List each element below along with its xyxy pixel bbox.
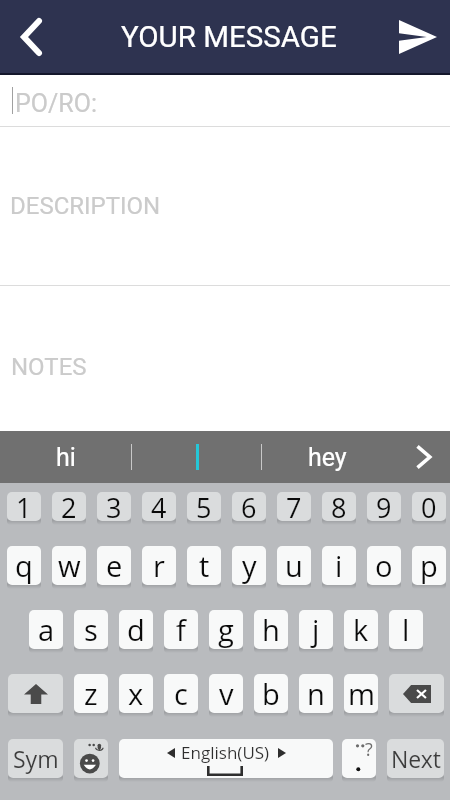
staticText: x — [128, 674, 144, 713]
button[interactable]: 7 — [277, 492, 311, 521]
button[interactable]: More suggestions — [396, 431, 450, 483]
staticText: 7 — [286, 492, 302, 518]
button[interactable]: 8 — [322, 492, 356, 521]
staticText: n — [307, 674, 325, 713]
button[interactable]: y — [232, 546, 266, 585]
staticText: m — [348, 674, 375, 713]
staticText: hey — [308, 443, 347, 472]
button[interactable]: f — [164, 610, 198, 649]
staticText: Next — [391, 743, 441, 774]
button[interactable]: n — [299, 674, 333, 713]
staticText: d — [127, 610, 145, 649]
staticText: c — [174, 674, 188, 713]
staticText: o — [375, 546, 393, 585]
button[interactable]: PO/RO: — [0, 75, 450, 127]
button[interactable]: Shift — [8, 674, 63, 713]
staticText: 1 — [16, 492, 32, 518]
staticText: k — [353, 610, 369, 649]
staticText: 2 — [61, 492, 77, 518]
button[interactable]: Emoji and voice input — [74, 739, 108, 778]
button[interactable]: hi — [1, 431, 130, 483]
button[interactable]: Sym — [8, 739, 63, 778]
staticText: e — [106, 546, 123, 585]
button[interactable]: c — [164, 674, 198, 713]
staticText: 8 — [331, 492, 347, 518]
staticText: Sym — [13, 743, 59, 774]
button[interactable]: Space, English (US) — [119, 739, 333, 778]
button[interactable]: 0 — [412, 492, 446, 521]
staticText: YOUR MESSAGE — [121, 20, 337, 55]
staticText: p — [420, 546, 438, 585]
button[interactable]: e — [97, 546, 131, 585]
staticText: English(US) — [181, 741, 270, 764]
staticText: hi — [56, 443, 76, 472]
staticText: w — [58, 546, 81, 585]
button[interactable]: 4 — [142, 492, 176, 521]
button[interactable]: d — [119, 610, 153, 649]
button[interactable]: l — [389, 610, 423, 649]
button[interactable]: a — [29, 610, 63, 649]
staticText: r — [153, 546, 165, 585]
button[interactable]: 6 — [232, 492, 266, 521]
staticText: l — [402, 610, 410, 649]
staticText: 9 — [376, 492, 392, 518]
button[interactable]: x — [119, 674, 153, 713]
button[interactable]: k — [344, 610, 378, 649]
button[interactable]: Backspace — [389, 674, 444, 713]
button[interactable]: 5 — [187, 492, 221, 521]
button[interactable]: DESCRIPTION — [0, 127, 450, 286]
button[interactable]: i — [322, 546, 356, 585]
button[interactable]: z — [74, 674, 108, 713]
button[interactable]: p — [412, 546, 446, 585]
staticText: g — [218, 610, 234, 649]
button[interactable]: v — [209, 674, 243, 713]
staticText: q — [15, 546, 33, 585]
button[interactable]: 1 — [7, 492, 41, 521]
button[interactable]: Back — [9, 0, 54, 73]
staticText: b — [262, 674, 280, 713]
button[interactable]: m — [344, 674, 378, 713]
staticText: s — [84, 610, 98, 649]
button[interactable]: Next — [387, 739, 444, 778]
staticText: 3 — [106, 492, 122, 518]
staticText: z — [84, 674, 98, 713]
staticText: f — [176, 610, 186, 649]
button[interactable]: 2 — [52, 492, 86, 521]
button[interactable]: g — [209, 610, 243, 649]
staticText: h — [262, 610, 280, 649]
staticText: v — [219, 674, 234, 713]
staticText: a — [38, 610, 55, 649]
staticText: NOTES — [11, 353, 87, 381]
button[interactable]: o — [367, 546, 401, 585]
button[interactable]: Send — [392, 0, 444, 73]
button[interactable]: j — [299, 610, 333, 649]
button[interactable]: hey — [263, 431, 392, 483]
staticText: j — [312, 610, 320, 649]
staticText: 0 — [421, 492, 437, 518]
staticText: i — [335, 546, 343, 585]
button[interactable]: h — [254, 610, 288, 649]
button[interactable]: u — [277, 546, 311, 585]
button[interactable]: b — [254, 674, 288, 713]
button[interactable]: 3 — [97, 492, 131, 521]
staticText: y — [242, 546, 257, 585]
staticText: PO/RO: — [15, 89, 97, 118]
button[interactable]: NOTES — [0, 286, 450, 430]
staticText: 5 — [196, 492, 212, 518]
button[interactable] — [133, 431, 261, 483]
button[interactable]: r — [142, 546, 176, 585]
button[interactable]: Period — [342, 739, 376, 778]
button[interactable]: 9 — [367, 492, 401, 521]
staticText: 6 — [241, 492, 257, 518]
button[interactable]: t — [187, 546, 221, 585]
staticText: t — [199, 546, 210, 585]
staticText: u — [285, 546, 303, 585]
button[interactable]: s — [74, 610, 108, 649]
staticText: 4 — [151, 492, 167, 518]
staticText: ? — [365, 739, 373, 762]
staticText: DESCRIPTION — [10, 192, 161, 220]
button[interactable]: q — [7, 546, 41, 585]
button[interactable]: w — [52, 546, 86, 585]
